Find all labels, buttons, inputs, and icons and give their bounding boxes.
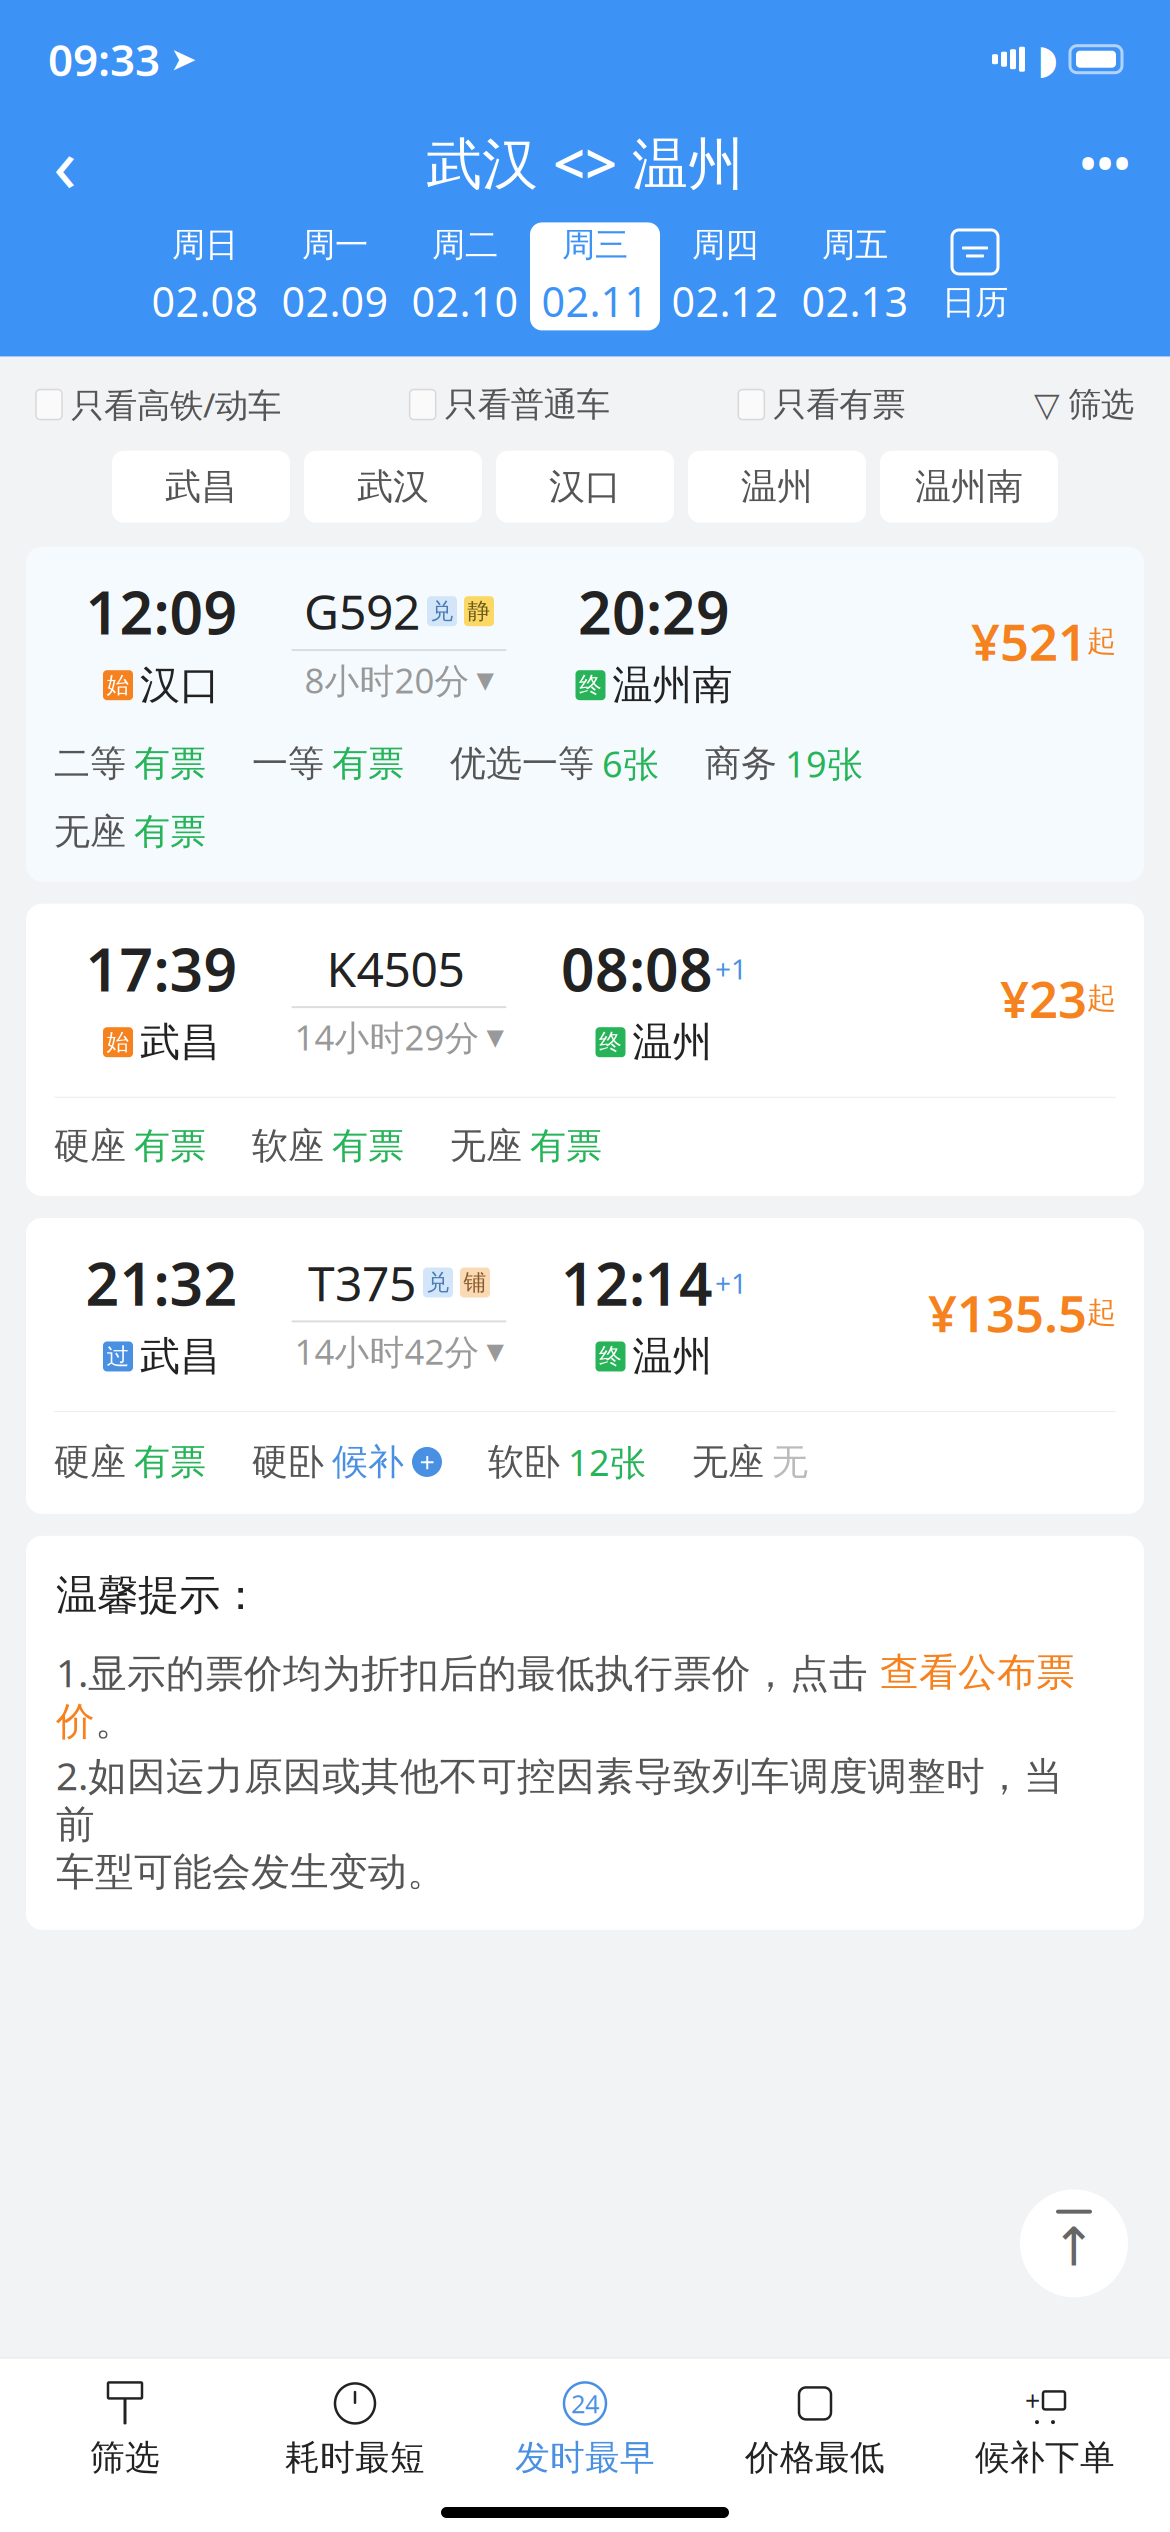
staticText: 铺 <box>463 1269 486 1296</box>
staticText: ↑ <box>1051 2217 1096 2277</box>
staticText: 硬卧 <box>252 1440 324 1484</box>
staticText: K4505 <box>326 936 464 1000</box>
staticText: 汉口 <box>140 661 220 710</box>
button[interactable]: 周日 <box>140 222 270 330</box>
staticText: 无 <box>772 1440 808 1484</box>
button[interactable]: 12:09 <box>26 547 1144 882</box>
staticText: 硬座 <box>54 1440 126 1484</box>
staticText: 查看公布票 <box>880 1649 1075 1696</box>
staticText: 2.如因运力原因或其他不可控因素导致列车调度调整时，当前 <box>56 1749 1063 1848</box>
staticText: 候补下单 <box>975 2436 1115 2479</box>
staticText: 有票 <box>134 1124 206 1168</box>
staticText: 武汉 <box>357 465 429 509</box>
staticText: 19张 <box>785 740 863 787</box>
staticText: 始 <box>106 1028 129 1056</box>
button[interactable]: 武昌 <box>112 451 290 523</box>
staticText: ➤ <box>170 41 197 77</box>
staticText: 价 <box>56 1698 95 1745</box>
staticText: 温州 <box>741 465 813 509</box>
staticText: ¥23 <box>1000 965 1087 1032</box>
button[interactable]: 17:39 <box>26 904 1144 1196</box>
staticText: 优选一等 <box>450 741 594 786</box>
button[interactable]: 筛选 <box>10 2374 240 2485</box>
staticText: + <box>419 1444 434 1480</box>
staticText: 汉口 <box>549 465 621 509</box>
button[interactable]: 查看公布票 <box>880 1649 1075 1696</box>
staticText: 起 <box>1087 980 1116 1016</box>
staticText: 周二 <box>432 224 498 265</box>
button[interactable]: 耗时最短 <box>240 2374 470 2485</box>
button[interactable]: 价 <box>56 1698 95 1745</box>
button[interactable]: 24 <box>470 2374 700 2485</box>
staticText: 08:08 <box>561 930 713 1008</box>
staticText: ▼ <box>476 667 493 693</box>
staticText: 8小时20分 <box>304 657 469 703</box>
staticText: 14小时29分 <box>294 1014 479 1060</box>
staticText: 车型可能会发生变动。 <box>56 1848 446 1896</box>
staticText: 02.10 <box>411 273 518 328</box>
button[interactable]: 只看有票 <box>738 384 905 425</box>
staticText: + <box>1025 2383 1040 2418</box>
staticText: ¥135.5 <box>928 1279 1087 1346</box>
staticText: 无座 <box>450 1124 522 1168</box>
staticText: T375 <box>308 1251 416 1314</box>
staticText: 12:09 <box>85 573 237 651</box>
button[interactable]: 温州 <box>688 451 866 523</box>
staticText: 商务 <box>705 741 777 786</box>
button[interactable]: 周三 <box>530 222 660 330</box>
staticText: 02.12 <box>671 273 778 328</box>
staticText: 21:32 <box>85 1244 237 1322</box>
staticText: 12:14 <box>561 1244 713 1322</box>
staticText: 软卧 <box>488 1440 560 1484</box>
staticText: 温州 <box>632 1332 712 1381</box>
staticText: 温州南 <box>915 465 1023 509</box>
staticText: 软座 <box>252 1124 324 1168</box>
staticText: 日历 <box>942 282 1008 323</box>
staticText: 武昌 <box>165 465 237 509</box>
button[interactable]: 21:32 <box>26 1218 1144 1514</box>
button[interactable]: 周二 <box>400 222 530 330</box>
staticText: 静 <box>467 597 490 625</box>
button[interactable]: 武汉 <box>304 451 482 523</box>
staticText: 温州南 <box>612 661 732 710</box>
button[interactable]: 日历 <box>920 222 1030 330</box>
button[interactable]: + <box>930 2374 1160 2485</box>
staticText: 有票 <box>134 1440 206 1484</box>
staticText: 有票 <box>332 1124 404 1168</box>
staticText: 24 <box>571 2387 599 2420</box>
staticText: ▼ <box>486 1024 503 1050</box>
staticText: 只看有票 <box>773 384 905 425</box>
staticText: 筛选 <box>1068 384 1134 425</box>
staticText: 无座 <box>692 1440 764 1484</box>
staticText: 02.11 <box>541 273 648 328</box>
button[interactable]: 回到顶部 <box>1020 2189 1128 2297</box>
button[interactable]: ▽ <box>1034 384 1134 425</box>
button[interactable]: More <box>1060 122 1150 202</box>
button[interactable]: 周四 <box>660 222 790 330</box>
button[interactable]: 汉口 <box>496 451 674 523</box>
staticText: 02.08 <box>151 273 258 328</box>
staticText: 有票 <box>332 741 404 786</box>
staticText: 温州 <box>632 1018 712 1067</box>
staticText: 17:39 <box>85 930 237 1008</box>
staticText: 1.显示的票价均为折扣后的最低执行票价，点击 <box>56 1647 880 1698</box>
staticText: 有票 <box>134 809 206 854</box>
staticText: 02.13 <box>801 273 908 328</box>
staticText: 武昌 <box>140 1332 220 1381</box>
staticText: ▼ <box>486 1338 503 1364</box>
button[interactable]: Back <box>20 122 110 202</box>
staticText: 武昌 <box>140 1018 220 1067</box>
staticText: 14小时42分 <box>294 1328 479 1374</box>
button[interactable]: 周五 <box>790 222 920 330</box>
button[interactable]: 价格最低 <box>700 2374 930 2485</box>
button[interactable]: 只看高铁/动车 <box>36 382 281 427</box>
staticText: 兑 <box>430 597 453 625</box>
staticText: 09:33 <box>48 30 160 88</box>
button[interactable]: 温州南 <box>880 451 1058 523</box>
staticText: 二等 <box>54 741 126 786</box>
staticText: 周五 <box>822 224 888 265</box>
staticText: 终 <box>599 1028 622 1056</box>
button[interactable]: 周一 <box>270 222 400 330</box>
button[interactable]: 只看普通车 <box>410 384 610 425</box>
staticText: 温馨提示： <box>56 1570 261 1621</box>
